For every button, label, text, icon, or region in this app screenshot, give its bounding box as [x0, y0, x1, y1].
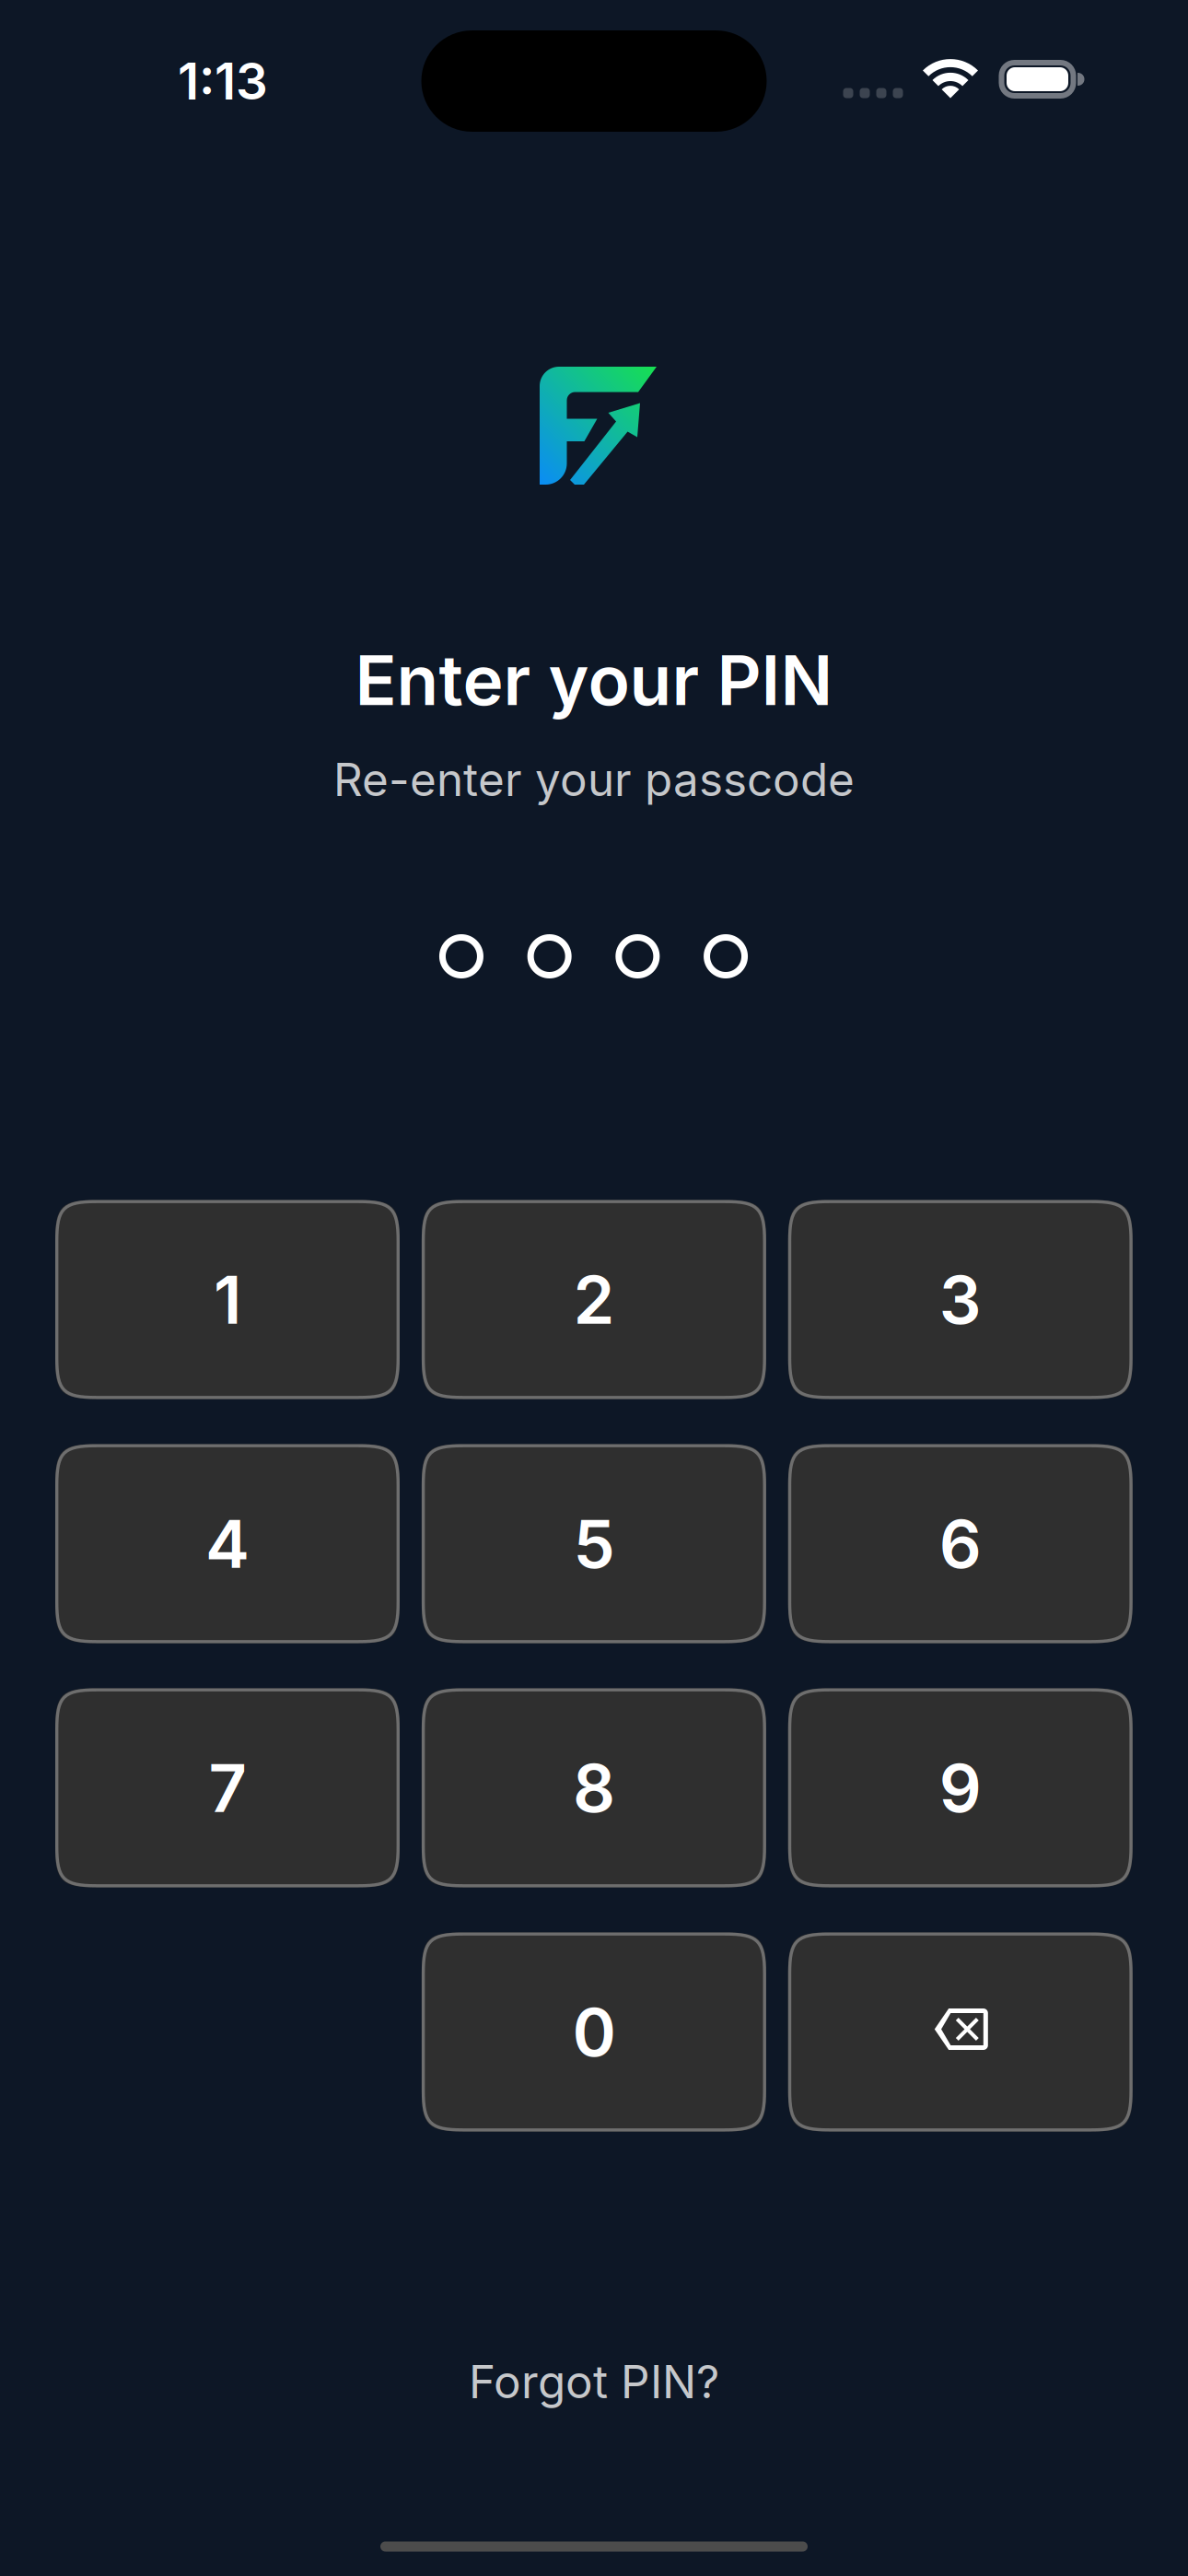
button[interactable]: 9 [788, 1688, 1133, 1887]
staticText: 4 [205, 1503, 250, 1584]
button[interactable]: 2 [422, 1200, 766, 1399]
button[interactable]: Forgot PIN? [410, 2340, 778, 2423]
button[interactable]: Delete [788, 1932, 1133, 2131]
staticText: 1:13 [178, 51, 268, 111]
staticText: 9 [939, 1748, 982, 1828]
button[interactable]: 4 [55, 1444, 400, 1643]
button[interactable]: 0 [422, 1932, 766, 2131]
staticText: Re-enter your passcode [333, 752, 855, 807]
staticText: 8 [573, 1748, 615, 1828]
button[interactable]: 1 [55, 1200, 400, 1399]
button[interactable]: 7 [55, 1688, 400, 1887]
staticText: Forgot PIN? [469, 2354, 719, 2409]
staticText: 2 [573, 1259, 615, 1340]
staticText: 3 [939, 1259, 982, 1340]
button[interactable]: 3 [788, 1200, 1133, 1399]
staticText: 6 [939, 1503, 982, 1584]
button[interactable]: 8 [422, 1688, 766, 1887]
button[interactable]: 6 [788, 1444, 1133, 1643]
staticText: 5 [573, 1503, 615, 1584]
staticText: Enter your PIN [355, 638, 833, 721]
staticText: 0 [572, 1992, 616, 2072]
staticText: 1 [214, 1259, 241, 1340]
staticText: 7 [209, 1748, 246, 1828]
button[interactable]: 5 [422, 1444, 766, 1643]
